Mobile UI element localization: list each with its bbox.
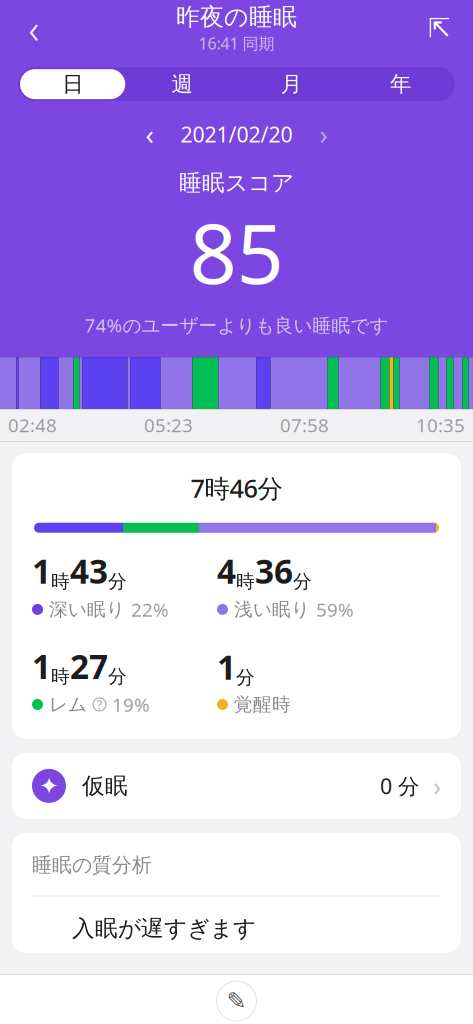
staticText: 分 [236, 666, 255, 689]
staticText: 7時46分 [190, 471, 282, 505]
staticText: 日 [62, 71, 83, 97]
staticText: 月 [281, 71, 302, 97]
staticText: 睡眠の質分析 [32, 853, 152, 877]
staticText: 4 [217, 549, 236, 593]
button[interactable]: 週 [127, 67, 236, 101]
staticText: 43 [70, 549, 108, 593]
staticText: ‹ [28, 2, 39, 55]
staticText: 時 [51, 570, 70, 593]
staticText: ✎ [226, 987, 246, 1015]
staticText: 19% [112, 692, 150, 717]
staticText: 1 [32, 644, 51, 688]
staticText: 0 分 [380, 772, 419, 800]
staticText: 年 [390, 71, 411, 97]
button[interactable]: 日 [18, 67, 127, 101]
button[interactable]: 共有 [413, 2, 465, 54]
staticText: 時 [236, 570, 255, 593]
staticText: 入眠が遅すぎます [72, 914, 256, 942]
staticText: 覚醒時 [234, 693, 291, 716]
button[interactable]: 月 [236, 67, 346, 101]
staticText: › [319, 116, 327, 152]
staticText: ? [97, 696, 102, 712]
button[interactable]: ✦ [0, 753, 473, 819]
staticText: ‹ [145, 116, 153, 152]
staticText: 16:41 同期 [198, 33, 274, 54]
staticText: 睡眠スコア [179, 169, 294, 197]
staticText: 時 [51, 665, 70, 688]
staticText: 深い眠り [49, 598, 125, 621]
staticText: 05:23 [144, 413, 193, 437]
staticText: 22% [131, 597, 169, 622]
button[interactable]: 戻る [8, 2, 60, 54]
staticText: 1 [217, 645, 236, 689]
button[interactable]: 年 [346, 67, 455, 101]
staticText: ✦ [39, 772, 59, 799]
staticText: 1 [32, 549, 51, 593]
staticText: 27 [70, 644, 108, 688]
staticText: 週 [171, 71, 192, 97]
staticText: 07:58 [280, 413, 329, 437]
staticText: 分 [293, 570, 312, 593]
staticText: 仮眠 [82, 772, 128, 800]
staticText: 36 [255, 549, 293, 593]
staticText: 02:48 [8, 413, 57, 437]
staticText: 2021/02/20 [180, 120, 292, 148]
staticText: 分 [108, 570, 127, 593]
button[interactable]: 前の日 [136, 119, 162, 149]
staticText: 74%のユーザーよりも良い睡眠です [84, 312, 388, 337]
staticText: › [433, 768, 441, 804]
staticText: 85 [189, 197, 283, 307]
staticText: 分 [108, 665, 127, 688]
staticText: 浅い眠り [234, 598, 310, 621]
button[interactable]: 次の日 [310, 119, 336, 149]
staticText: 10:35 [416, 413, 465, 437]
staticText: ⇱ [428, 13, 450, 43]
staticText: レム [49, 693, 87, 716]
staticText: 59% [316, 597, 354, 622]
staticText: 昨夜の睡眠 [176, 2, 297, 32]
button[interactable]: 編集 [216, 981, 256, 1024]
